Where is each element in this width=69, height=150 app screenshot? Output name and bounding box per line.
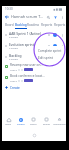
button[interactable]: Back [3, 13, 10, 20]
staticText: 5 issues [9, 57, 18, 60]
staticText: 10:30 [5, 7, 13, 11]
staticText: Board [5, 23, 14, 27]
button[interactable]: Create [2, 83, 66, 92]
staticText: Create [10, 86, 20, 90]
staticText: Notifications [53, 123, 66, 126]
button[interactable]: AAB Sprint 1 (Active) [2, 29, 66, 40]
staticText: Backlog [9, 53, 22, 57]
staticText: AAB Sprint 1 (Active) [9, 31, 42, 35]
staticText: Edit sprint [38, 56, 53, 60]
button[interactable]: Book conference locat... [2, 72, 66, 83]
button[interactable]: Backlog [2, 51, 66, 62]
button[interactable]: Search [27, 113, 40, 130]
staticText: Backlog [15, 23, 27, 27]
button[interactable]: Evolution sprint [2, 40, 66, 51]
staticText: Boards [43, 123, 50, 126]
staticText: AAB-3 [10, 68, 17, 71]
staticText: Book conference locat... [10, 74, 45, 78]
staticText: Complete sprint [38, 49, 62, 53]
staticText: Roadmap [27, 23, 40, 27]
button[interactable]: Roadmap [27, 21, 40, 29]
button[interactable]: More options [59, 14, 65, 20]
button[interactable]: Backlog [15, 21, 27, 29]
button[interactable]: Reports [40, 21, 53, 29]
staticText: Reports [41, 23, 53, 27]
button[interactable]: Notifications [53, 113, 66, 130]
button[interactable]: Complete sprint [35, 47, 64, 54]
button[interactable]: Home [2, 113, 14, 130]
staticText: 3 issues [9, 35, 18, 38]
button[interactable]: Board [3, 21, 15, 29]
button[interactable]: Reports [53, 21, 66, 29]
staticText: AAB-4 [10, 79, 17, 82]
button[interactable]: Revamp new user on... [2, 61, 66, 72]
staticText: Reports [54, 23, 66, 27]
button[interactable]: Boards [40, 113, 53, 130]
staticText: Projects [17, 123, 25, 126]
staticText: Evolution sprint [9, 42, 34, 46]
staticText: Hannah scrum T... [11, 14, 44, 19]
button[interactable]: Sprint actions [60, 33, 64, 37]
staticText: Revamp new user on... [10, 63, 43, 67]
button[interactable]: Projects [14, 113, 27, 130]
staticText: 3 issues [9, 46, 18, 49]
staticText: Home [5, 123, 11, 126]
staticText: Search [30, 123, 37, 126]
button[interactable]: Sprint actions [60, 55, 64, 59]
button[interactable]: Filter [52, 14, 58, 20]
button[interactable]: Sprint actions [60, 44, 64, 48]
button[interactable]: Search [45, 14, 51, 20]
button[interactable]: Edit sprint [35, 54, 64, 61]
